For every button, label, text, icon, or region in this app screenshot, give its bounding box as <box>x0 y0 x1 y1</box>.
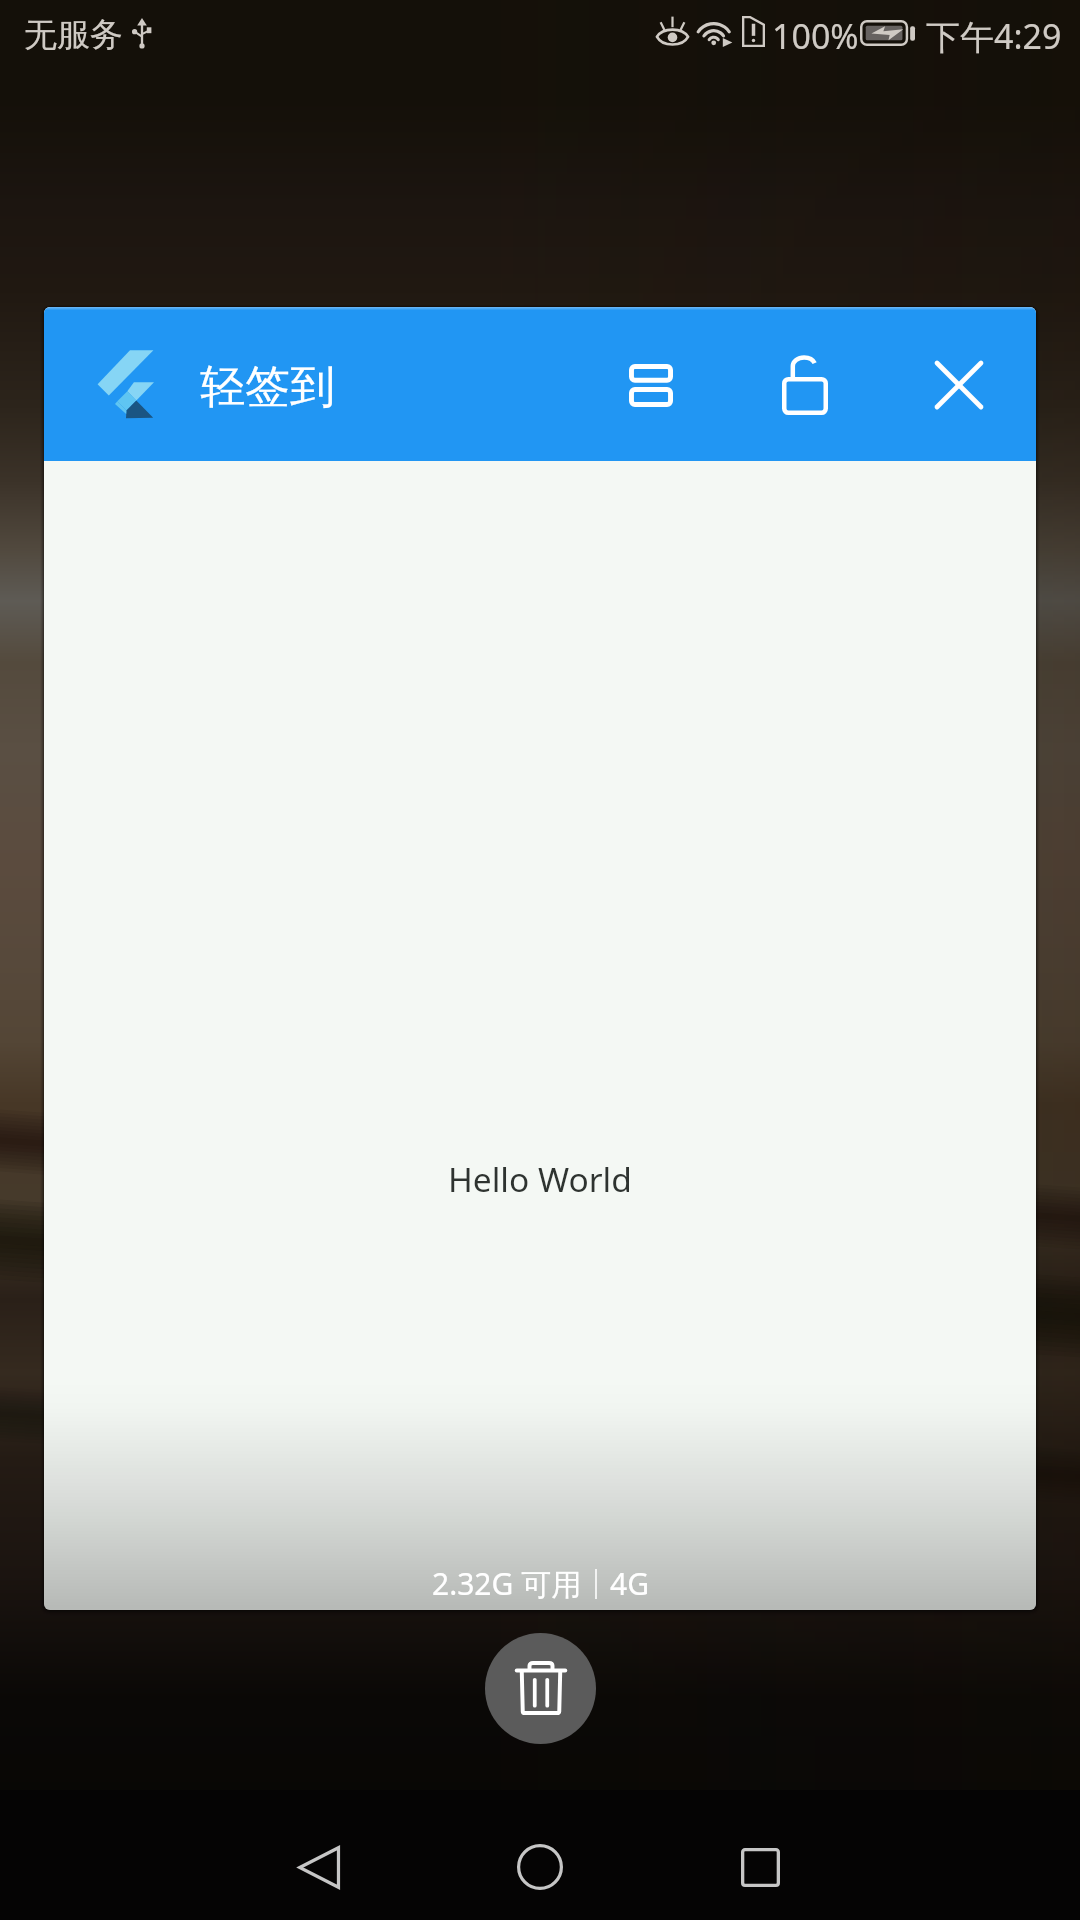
staticText: Hello World <box>448 1156 632 1202</box>
button[interactable]: 轻签到 <box>44 307 1036 1610</box>
button[interactable]: Recents <box>640 1790 880 1920</box>
button[interactable]: Lock task <box>739 319 871 451</box>
staticText: 4G <box>610 1563 649 1604</box>
button[interactable]: Back <box>200 1790 440 1920</box>
button[interactable]: Home <box>420 1790 660 1920</box>
staticText: 100% <box>772 13 859 59</box>
button[interactable]: Clear all <box>485 1633 596 1744</box>
staticText: 2.32G 可用 <box>432 1563 582 1604</box>
staticText: 轻签到 <box>200 359 335 416</box>
staticText: 无服务 <box>24 14 123 56</box>
button[interactable]: Split screen <box>585 319 717 451</box>
button[interactable]: Close <box>893 319 1025 451</box>
staticText: 下午4:29 <box>926 13 1062 59</box>
